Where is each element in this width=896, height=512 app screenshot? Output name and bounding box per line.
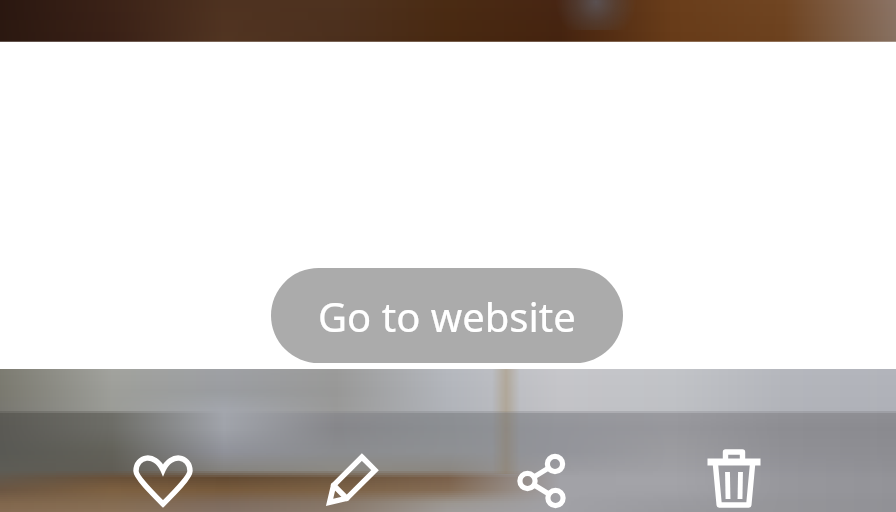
button[interactable]: Delete — [692, 439, 776, 512]
button[interactable]: Favorite — [121, 439, 205, 512]
button[interactable]: Go to website — [271, 268, 623, 363]
staticText: Go to website — [318, 289, 576, 343]
button[interactable]: Share — [499, 439, 583, 512]
button[interactable]: Edit — [307, 439, 391, 512]
